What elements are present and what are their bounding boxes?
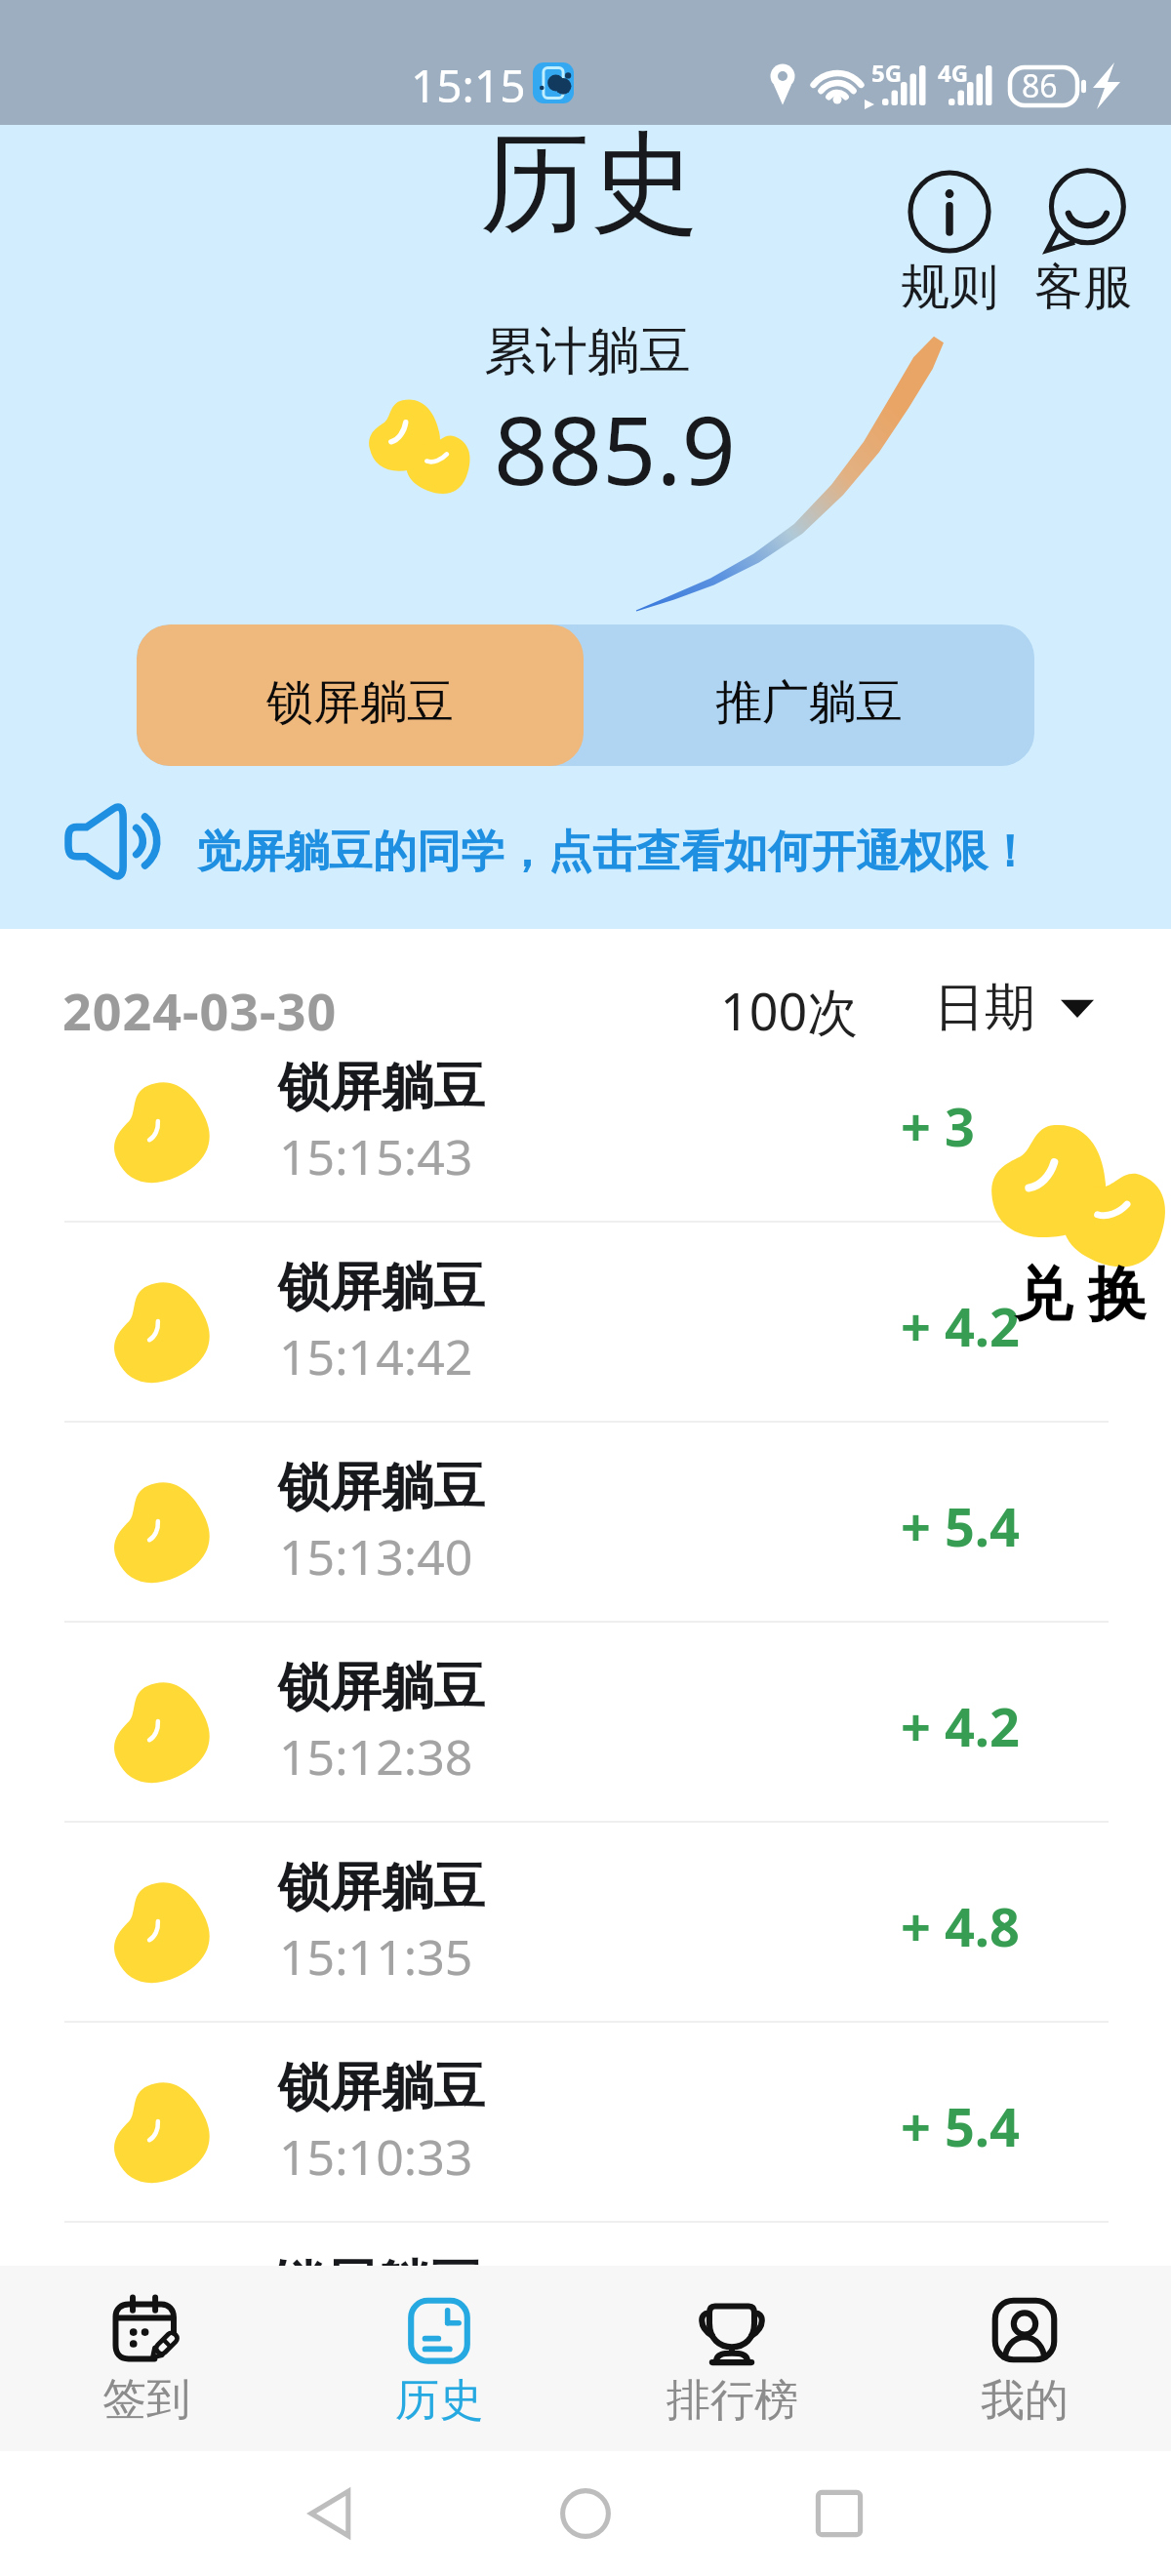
staticText: 885.9 [494, 383, 736, 512]
staticText: + 3 [901, 1090, 975, 1162]
button[interactable]: 锁屏躺豆 [0, 2023, 1171, 2223]
button[interactable]: 排行榜 [585, 2266, 878, 2451]
staticText: 锁屏躺豆 [278, 2055, 485, 2120]
staticText: 15:15 [411, 55, 526, 116]
other: Rules [907, 169, 992, 255]
staticText: 锁屏躺豆 [278, 1255, 485, 1320]
staticText: + 4.2 [901, 1690, 1020, 1762]
staticText: 推广躺豆 [715, 673, 903, 732]
staticText: 兑 换 [1014, 1252, 1147, 1332]
staticText: 15:13:40 [279, 1523, 473, 1590]
button[interactable]: 兑 换 [978, 1106, 1165, 1315]
staticText: 历史 [395, 2373, 483, 2429]
other: Customer service [1040, 169, 1126, 255]
staticText: 5G [871, 57, 903, 89]
staticText: 日期 [934, 976, 1035, 1040]
staticText: + 4.2 [901, 1290, 1020, 1362]
button[interactable]: 锁屏躺豆 [0, 1823, 1171, 2023]
staticText: 锁屏躺豆 [278, 1655, 485, 1720]
staticText: 15:11:35 [279, 1923, 473, 1990]
staticText: + 5.4 [901, 1490, 1020, 1562]
button[interactable]: 锁屏躺豆 [0, 1223, 1171, 1423]
staticText: 锁屏躺豆 [278, 1055, 485, 1120]
button[interactable]: 锁屏躺豆 [0, 1623, 1171, 1823]
staticText: 累计躺豆 [484, 319, 691, 384]
staticText: 规则 [901, 257, 998, 318]
button[interactable]: 锁屏躺豆 [0, 1023, 1171, 1223]
staticText: 锁屏躺豆 [266, 673, 454, 732]
staticText: 100次 [720, 976, 859, 1045]
button[interactable]: 觉屏躺豆的同学，点击查看如何开通权限！ [55, 792, 1040, 886]
staticText: 锁屏躺豆 [278, 1455, 485, 1520]
staticText: 15:12:38 [279, 1723, 473, 1790]
button[interactable]: Rules [901, 169, 998, 318]
staticText: 15:10:33 [279, 2123, 473, 2190]
staticText: 4G [938, 57, 969, 89]
staticText: 15:14:42 [279, 1323, 473, 1389]
staticText: + 5.4 [901, 2090, 1020, 2162]
staticText: 15:15:43 [279, 1123, 473, 1189]
staticText: 历史 [480, 115, 699, 253]
staticText: 排行榜 [666, 2373, 798, 2429]
button[interactable]: 我的 [878, 2266, 1171, 2451]
staticText: 锁屏躺豆 [271, 2252, 482, 2318]
button[interactable]: 签到 [0, 2266, 293, 2451]
button[interactable]: 锁屏躺豆 [137, 624, 584, 766]
button[interactable]: 日期 [934, 976, 1094, 1040]
staticText: 锁屏躺豆 [278, 1855, 485, 1920]
button[interactable]: 历史 [293, 2266, 585, 2451]
staticText: 我的 [981, 2373, 1069, 2429]
staticText: + 4.8 [901, 1890, 1020, 1962]
staticText: 觉屏躺豆的同学，点击查看如何开通权限！ [197, 825, 1031, 880]
staticText: 客服 [1034, 257, 1132, 318]
button[interactable]: 锁屏躺豆 [0, 1423, 1171, 1623]
staticText: 2024-03-30 [62, 976, 338, 1045]
button[interactable]: Customer service [1034, 169, 1132, 318]
staticText: 86 [1022, 64, 1058, 107]
button[interactable]: 推广躺豆 [584, 624, 1034, 766]
staticText: 签到 [102, 2372, 190, 2428]
